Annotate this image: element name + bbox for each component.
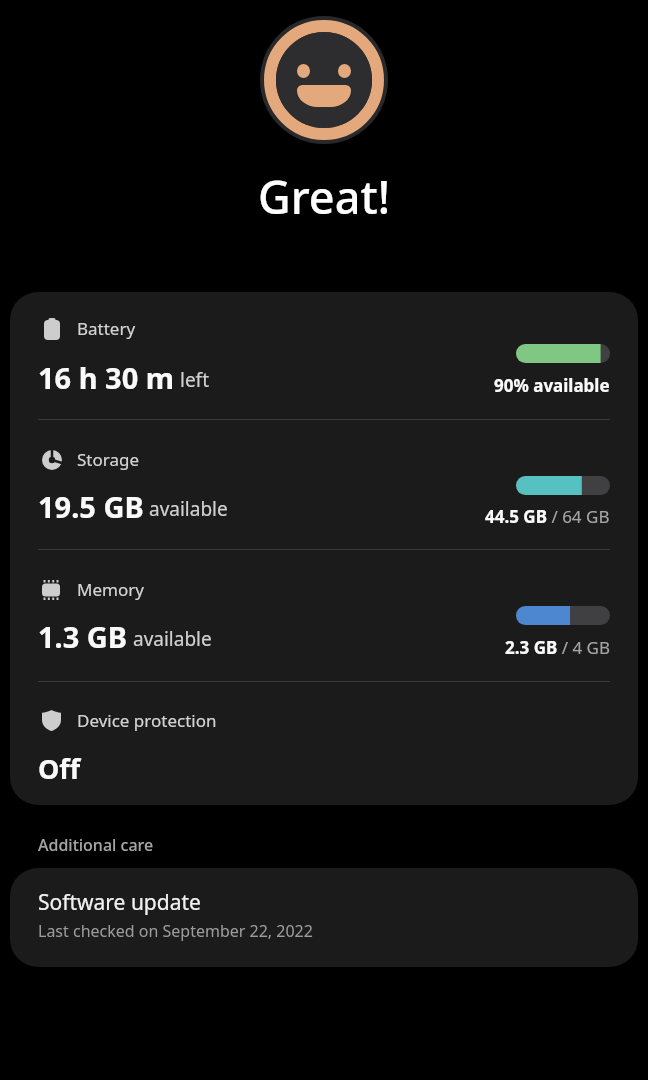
staticText: Memory <box>77 578 144 601</box>
staticText: Software update <box>38 888 201 917</box>
staticText: 2.3 GB / 4 GB <box>505 636 610 659</box>
staticText: available <box>133 626 212 652</box>
staticText: Battery <box>77 317 136 340</box>
button[interactable]: Memory <box>10 550 638 681</box>
button[interactable]: Software update <box>10 868 638 967</box>
staticText: 1.3 GB <box>38 617 128 656</box>
staticText: Great! <box>258 166 390 227</box>
staticText: available <box>149 496 228 522</box>
staticText: 19.5 GB <box>38 487 144 526</box>
staticText: Off <box>38 750 81 787</box>
staticText: left <box>180 367 210 393</box>
button[interactable]: Battery <box>10 292 638 419</box>
staticText: Storage <box>77 448 140 471</box>
staticText: 90% available <box>494 374 610 397</box>
button[interactable]: Device protection <box>10 682 638 805</box>
staticText: Device protection <box>77 709 217 732</box>
button[interactable]: Storage <box>10 420 638 549</box>
staticText: Last checked on September 22, 2022 <box>38 920 313 942</box>
staticText: 16 h 30 m <box>38 358 175 397</box>
staticText: 44.5 GB / 64 GB <box>485 505 610 528</box>
staticText: Additional care <box>38 834 154 856</box>
